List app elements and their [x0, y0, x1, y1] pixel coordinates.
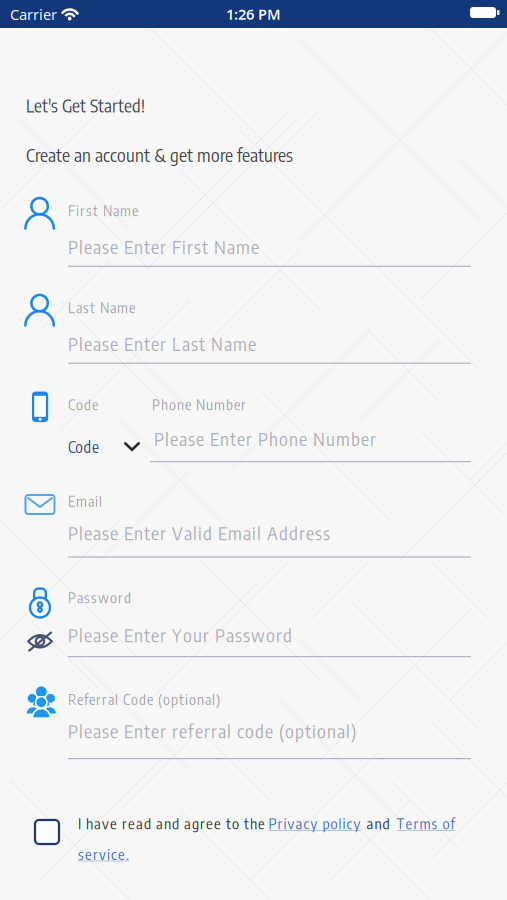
button[interactable]: Code: [68, 437, 140, 456]
staticText: Carrier: [10, 5, 57, 24]
staticText: C o d e: [68, 395, 98, 413]
button[interactable]: Show password: [27, 632, 53, 651]
button[interactable]: Agree to terms: [35, 820, 59, 844]
staticText: P l e a s e E n t e r Y o u r P a s s w …: [68, 623, 292, 646]
staticText: Create an account & get more features: [26, 143, 293, 166]
staticText: s e r v i c e .: [78, 845, 129, 863]
staticText: P l e a s e E n t e r L a s t N a m e: [68, 332, 256, 355]
staticText: P l e a s e E n t e r F i r s t N a m e: [68, 235, 259, 258]
button[interactable]: T e r m s o f: [396, 814, 471, 833]
staticText: T e r m s o f: [396, 814, 455, 833]
button[interactable]: P r i v a c y p o l i c y: [268, 814, 368, 833]
staticText: P a s s w o r d: [68, 588, 131, 606]
staticText: Let's Get Started!: [26, 94, 145, 116]
button[interactable]: Terms of service: [78, 845, 148, 863]
staticText: F i r s t N a m e: [68, 201, 138, 219]
staticText: E m a i l: [68, 492, 102, 510]
staticText: P h o n e N u m b e r: [152, 395, 246, 413]
staticText: 1:26 PM: [226, 4, 281, 24]
staticText: R e f e r r a l C o d e ( o p t i o n a …: [68, 690, 220, 708]
staticText: P l e a s e E n t e r V a l i d E m a i …: [68, 521, 330, 544]
staticText: I h a v e r e a d a n d a g r e e t o t …: [78, 814, 265, 833]
staticText: P l e a s e E n t e r r e f e r r a l c …: [68, 719, 356, 742]
staticText: P r i v a c y p o l i c y: [268, 814, 360, 833]
staticText: Code: [68, 437, 99, 456]
staticText: a n d: [366, 814, 389, 833]
staticText: P l e a s e E n t e r P h o n e N u m b …: [154, 427, 376, 450]
staticText: L a s t N a m e: [68, 298, 135, 316]
